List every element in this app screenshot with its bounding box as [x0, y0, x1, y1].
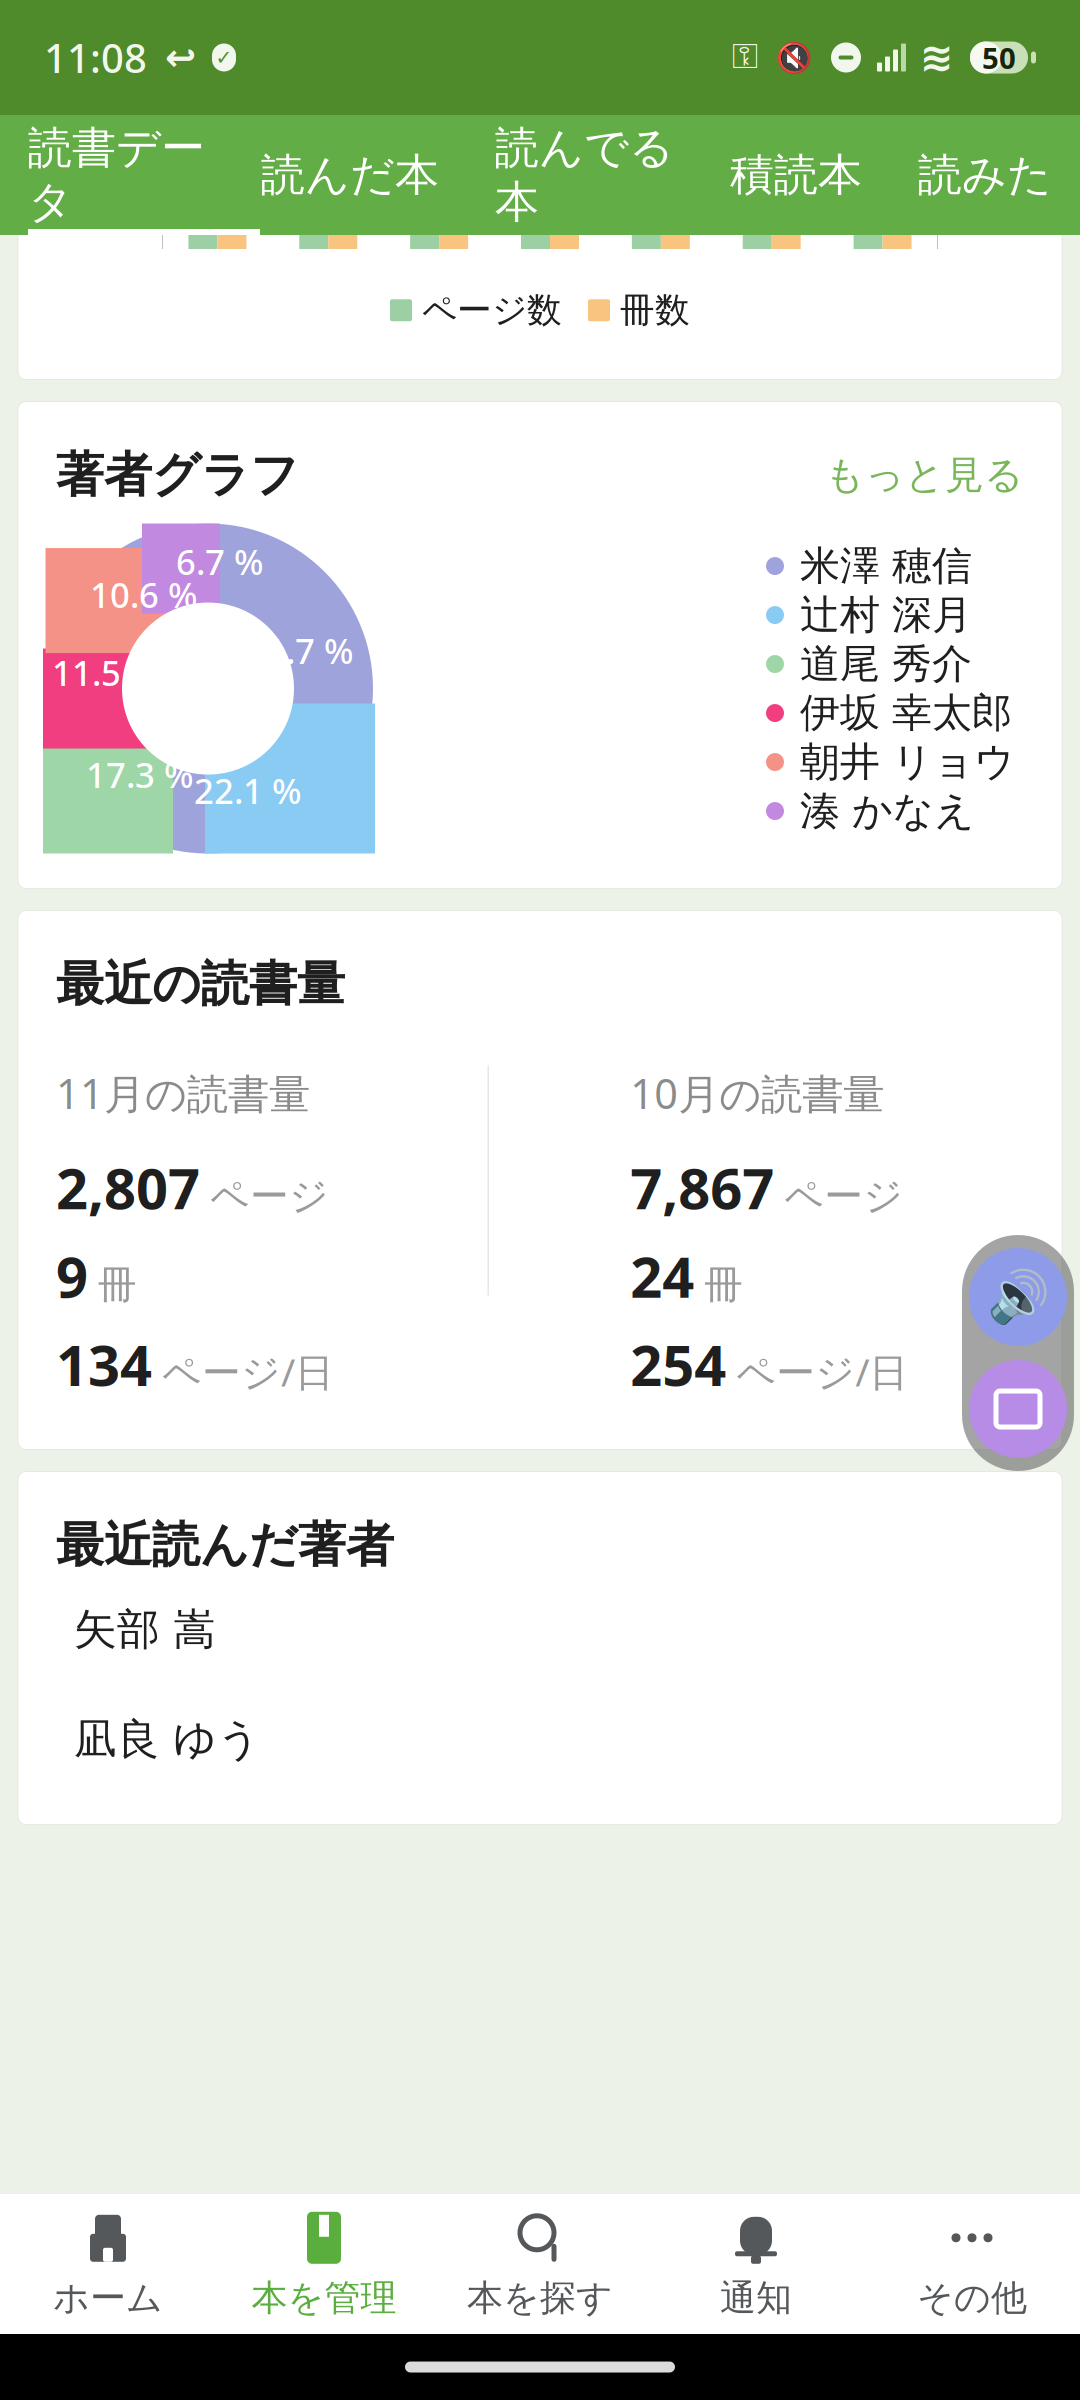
button[interactable]: 読書データ	[0, 115, 233, 235]
staticText: 10.6 %	[90, 571, 198, 617]
staticText: 読んでる本	[495, 121, 674, 229]
staticText: ≋	[920, 35, 954, 80]
staticText: 米澤 穂信	[800, 541, 972, 591]
staticText: 🔇	[776, 41, 813, 74]
button[interactable]: 通知	[648, 2194, 864, 2334]
button[interactable]: 矢部 嵩	[18, 1574, 1062, 1684]
staticText: その他	[917, 2276, 1027, 2320]
staticText: 本を探す	[467, 2276, 613, 2320]
button[interactable]: 読みた	[890, 115, 1080, 235]
button[interactable]: 読んでる本	[467, 115, 702, 235]
staticText: ✓	[215, 46, 232, 69]
staticText: ホーム	[53, 2276, 163, 2320]
staticText: ページ数	[422, 289, 562, 332]
staticText: 🔊	[986, 1268, 1049, 1326]
staticText: 本を管理	[251, 2276, 396, 2320]
button[interactable]: 読んだ本	[233, 115, 467, 235]
staticText: 朝井 リョウ	[800, 737, 1015, 787]
staticText: 冊	[704, 1261, 743, 1308]
staticText: ページ/日	[736, 1346, 908, 1397]
staticText: 読みた	[918, 148, 1052, 202]
staticText: 22.1 %	[194, 767, 302, 813]
staticText: 50	[982, 38, 1016, 77]
staticText: 凪良 ゆう	[74, 1713, 261, 1766]
staticText: ⚿	[732, 41, 758, 74]
staticText: ページ	[784, 1173, 903, 1220]
button[interactable]: 凪良 ゆう	[18, 1684, 1062, 1794]
staticText: 伊坂 幸太郎	[800, 688, 1012, 738]
staticText: 380	[952, 166, 1009, 210]
button[interactable]: 本を探す	[432, 2194, 648, 2334]
staticText: 道尾 秀介	[800, 639, 972, 689]
staticText: もっと見る	[825, 451, 1024, 499]
staticText: 24	[630, 1239, 694, 1313]
button[interactable]: Read aloud	[962, 1241, 1074, 1353]
button[interactable]: 本を管理	[216, 2194, 432, 2334]
staticText: 9	[56, 1239, 88, 1313]
staticText: 読書データ	[28, 121, 205, 229]
staticText: ↩	[165, 36, 196, 79]
staticText: 通知	[720, 2276, 792, 2320]
staticText: 6.7 %	[176, 538, 264, 584]
button[interactable]: Feedback	[962, 1353, 1074, 1465]
staticText: 11:08	[44, 31, 147, 84]
staticText: 134	[56, 1327, 152, 1401]
staticText: ページ	[210, 1173, 329, 1220]
staticText: 辻村 深月	[800, 590, 972, 640]
staticText: ページ/日	[162, 1346, 334, 1397]
staticText: 矢部 嵩	[74, 1603, 216, 1656]
staticText: 254	[630, 1327, 726, 1401]
staticText: 7,867	[630, 1150, 774, 1225]
staticText: 最近読んだ著者	[56, 1515, 394, 1574]
button[interactable]: ホーム	[0, 2194, 216, 2334]
staticText: 31.7 %	[246, 627, 354, 673]
staticText: 17.3 %	[86, 751, 194, 797]
button[interactable]: 積読本	[702, 115, 890, 235]
staticText: 11.5 %	[52, 649, 160, 695]
staticText: 著者グラフ	[56, 446, 299, 505]
button[interactable]: その他	[864, 2194, 1080, 2334]
staticText: 冊	[98, 1261, 137, 1308]
staticText: 最近の読書量	[56, 954, 345, 1013]
staticText: 11月の読書量	[56, 1065, 310, 1120]
staticText: 10月の読書量	[630, 1065, 884, 1120]
staticText: 湊 かなえ	[800, 786, 975, 836]
staticText: 2,807	[56, 1150, 200, 1225]
button[interactable]: もっと見る	[825, 451, 1024, 499]
staticText: 129,000	[25, 166, 148, 210]
staticText: 積読本	[730, 148, 862, 202]
staticText: 読んだ本	[261, 148, 439, 202]
staticText: 冊数	[620, 289, 690, 332]
